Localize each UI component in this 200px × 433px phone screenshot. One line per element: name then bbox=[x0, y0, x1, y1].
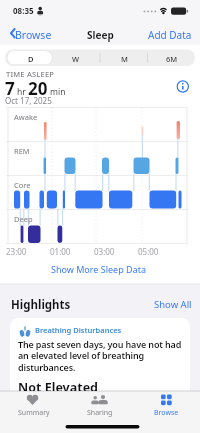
staticText: REM bbox=[14, 146, 30, 156]
button[interactable]: Add Data bbox=[140, 22, 200, 44]
staticText: 05:00 bbox=[138, 246, 159, 257]
staticText: Add Data bbox=[148, 28, 192, 42]
button[interactable] bbox=[10, 318, 190, 433]
staticText: Sleep bbox=[87, 28, 114, 42]
staticText: Browse bbox=[15, 28, 52, 42]
button[interactable] bbox=[0, 391, 66, 425]
staticText: Awake bbox=[14, 112, 38, 122]
staticText: Core bbox=[14, 180, 31, 190]
staticText: min bbox=[50, 86, 66, 98]
button[interactable] bbox=[134, 391, 200, 425]
staticText: Breathing Disturbances bbox=[35, 325, 122, 335]
button[interactable]: W bbox=[52, 50, 100, 67]
staticText: hr bbox=[17, 86, 26, 98]
staticText: W bbox=[72, 54, 80, 64]
button[interactable]: Show All bbox=[140, 296, 195, 312]
button[interactable]: M bbox=[100, 50, 148, 67]
staticText: Sharing bbox=[87, 408, 113, 418]
staticText: Oct 17, 2025 bbox=[5, 95, 52, 106]
staticText: Highlights bbox=[11, 297, 71, 313]
button[interactable]: 6M bbox=[148, 50, 196, 67]
staticText: 7 bbox=[5, 77, 15, 100]
staticText: Summary bbox=[18, 408, 50, 418]
staticText: 20 bbox=[28, 77, 48, 100]
staticText: Deep bbox=[14, 214, 33, 224]
staticText: 23:00 bbox=[6, 246, 27, 257]
staticText: 01:00 bbox=[50, 246, 71, 257]
staticText: TIME ASLEEP bbox=[6, 69, 55, 79]
staticText: Browse bbox=[154, 408, 179, 418]
button[interactable]: Browse bbox=[0, 22, 62, 44]
staticText: The past seven days, you have not had an… bbox=[18, 338, 182, 374]
staticText: Show More Sleep Data bbox=[51, 263, 146, 275]
staticText: 03:00 bbox=[94, 246, 115, 257]
staticText: 6M bbox=[166, 54, 178, 64]
button[interactable] bbox=[67, 391, 133, 425]
button[interactable] bbox=[174, 78, 192, 96]
staticText: 08:35 bbox=[13, 5, 34, 16]
staticText: Not Elevated bbox=[18, 379, 99, 391]
staticText: Show All bbox=[154, 298, 192, 311]
button[interactable]: D bbox=[8, 50, 53, 67]
staticText: D bbox=[28, 54, 34, 64]
staticText: M bbox=[121, 54, 128, 64]
button[interactable]: Show More Sleep Data bbox=[0, 263, 198, 277]
